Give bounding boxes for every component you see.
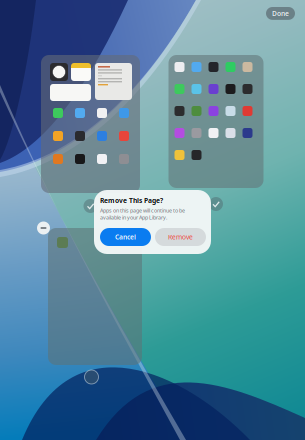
button[interactable]: Done <box>266 7 295 20</box>
button[interactable]: Remove <box>155 228 206 246</box>
staticText: Apps on this page will continue to be <box>100 207 185 214</box>
staticText: available in your App Library. <box>100 214 167 221</box>
staticText: Done <box>272 9 289 18</box>
button[interactable]: Cancel <box>100 228 151 246</box>
staticText: Remove <box>168 233 193 241</box>
staticText: Cancel <box>115 233 136 241</box>
staticText: Remove This Page? <box>100 196 163 205</box>
